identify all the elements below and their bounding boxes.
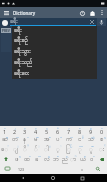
staticText: ဵ [104, 144, 106, 148]
staticText: တ [12, 135, 18, 144]
button[interactable]: ခရီးဝေး [12, 68, 97, 79]
button[interactable]: ဝ [22, 154, 32, 164]
staticText: ါ [74, 154, 77, 158]
staticText: 0 [100, 128, 104, 135]
button[interactable]: ။ [76, 164, 88, 174]
button[interactable]: ှ [10, 144, 20, 154]
button[interactable]: ၅ [41, 126, 52, 135]
button[interactable]: ဦ [74, 135, 85, 144]
button[interactable]: ္ [30, 144, 41, 154]
staticText: 5 [45, 128, 49, 135]
staticText: ဌ [19, 154, 21, 158]
staticText: ့ [56, 145, 60, 154]
button[interactable]: ီ [20, 144, 30, 154]
button[interactable]: ၂ [10, 126, 20, 135]
staticText: ဤ [91, 135, 95, 139]
button[interactable]: ၀ [96, 126, 107, 135]
button[interactable]: Switch language [0, 164, 14, 174]
button[interactable]: More options [97, 8, 106, 17]
staticText: ခရီး [10, 18, 18, 26]
staticText: 3 [23, 128, 27, 135]
button[interactable]: ဃ [63, 135, 74, 144]
button[interactable]: Search [1, 19, 8, 26]
button[interactable]: ံ [52, 144, 63, 154]
button[interactable]: History [77, 8, 87, 18]
staticText: 4 [34, 128, 38, 135]
staticText: ၀ [101, 126, 103, 130]
button[interactable]: Recent apps [77, 174, 88, 182]
button[interactable]: Clear text [88, 18, 96, 26]
staticText: ။ [81, 166, 83, 173]
button[interactable]: ွ [41, 144, 52, 154]
button[interactable]: ဤ [85, 135, 96, 144]
button[interactable]: ၃ [20, 126, 30, 135]
button[interactable]: Back [18, 174, 29, 182]
staticText: ဏ [91, 144, 95, 148]
staticText: င [78, 135, 82, 144]
button[interactable]: Backspace [96, 154, 107, 164]
staticText: ယ [80, 155, 86, 164]
button[interactable]: ဃ [32, 154, 42, 164]
button[interactable]: ခရီးသွား [12, 46, 97, 57]
button[interactable]: ခရီးသည် [12, 57, 97, 68]
staticText: ဓ [57, 154, 59, 158]
button[interactable]: ဉ [60, 154, 69, 164]
staticText: ခရီး [14, 27, 22, 35]
button[interactable]: ဋ [96, 135, 107, 144]
button[interactable]: ဖ [52, 135, 63, 144]
button[interactable]: ဧ [41, 135, 52, 144]
button[interactable]: ဂ [20, 135, 30, 144]
button[interactable]: ဏ [30, 135, 41, 144]
staticText: ာ [70, 155, 77, 164]
staticText: ြ [66, 145, 71, 154]
button[interactable]: ၁ [0, 126, 10, 135]
button[interactable]: ၈ [74, 126, 85, 135]
button[interactable]: ဨ [78, 154, 87, 164]
staticText: ဲ [7, 144, 9, 148]
button[interactable]: ဲ [0, 144, 10, 154]
staticText: ည [62, 155, 68, 164]
button[interactable]: ြ [63, 144, 74, 154]
button[interactable]: ခရီးစဉ် [12, 36, 97, 46]
button[interactable]: ဠ [42, 154, 51, 164]
button[interactable]: ဟ [10, 135, 20, 144]
button[interactable]: ၄ [30, 126, 41, 135]
staticText: အ [44, 135, 50, 144]
staticText: 1 [3, 128, 7, 135]
button[interactable]: ၆ [52, 126, 63, 135]
staticText: 9 [89, 128, 93, 135]
button[interactable]: ၉ [85, 126, 96, 135]
button[interactable]: ခရီး [12, 26, 97, 36]
staticText: ံ [60, 144, 62, 148]
button[interactable]: Home [47, 174, 58, 182]
staticText: ု [78, 145, 82, 154]
button[interactable]: Search [88, 164, 107, 174]
staticText: ဦ [82, 135, 84, 139]
button[interactable]: Shift [0, 154, 12, 164]
button[interactable]: PREV [1, 28, 11, 33]
staticText: က [66, 135, 72, 144]
button[interactable]: Navigation menu [2, 8, 11, 17]
staticText: ါ [44, 145, 49, 154]
staticText: 123 [18, 167, 25, 172]
button[interactable]: ဝ [87, 154, 96, 164]
button[interactable]: ဌ [12, 154, 22, 164]
staticText: ္ [38, 144, 40, 148]
button[interactable]: ဿ [74, 144, 85, 154]
button[interactable]: ၇ [63, 126, 74, 135]
staticText: ထ [24, 155, 30, 164]
staticText: ဏ [36, 135, 40, 139]
button[interactable]: Voice search [97, 18, 106, 26]
button[interactable]: Bookmarks [87, 8, 97, 18]
staticText: ဋ [104, 135, 106, 139]
button[interactable]: ဈ [0, 135, 10, 144]
button[interactable]: ဏ [85, 144, 96, 154]
staticText: ီ [27, 144, 29, 148]
button[interactable]: 123 [14, 164, 29, 174]
staticText: ဆ [2, 135, 8, 144]
button[interactable]: ဓ [51, 154, 60, 164]
button[interactable]: ဵ [96, 144, 107, 154]
button[interactable]: ါ [69, 154, 78, 164]
staticText: ဈ [6, 135, 9, 139]
